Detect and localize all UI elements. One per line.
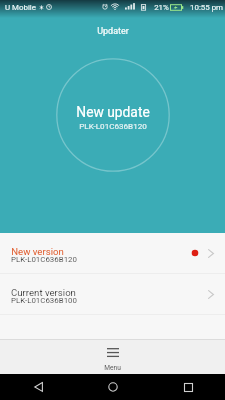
button[interactable]: Back [27, 376, 49, 398]
button[interactable]: Recent apps [177, 376, 199, 398]
staticText: New update [76, 104, 150, 120]
staticText: PLK-L01C636B120 [11, 255, 77, 264]
button[interactable]: Home [102, 376, 124, 398]
staticText: 21% [154, 3, 169, 12]
button[interactable]: Current version [0, 274, 225, 314]
button[interactable]: New version [0, 233, 225, 273]
staticText: PLK-L01C636B100 [11, 296, 77, 305]
staticText: Updater [97, 26, 129, 37]
staticText: New version [11, 246, 64, 257]
staticText: Current version [11, 287, 76, 298]
button[interactable]: Menu [0, 340, 225, 374]
staticText: Menu [104, 364, 121, 372]
staticText: U Mobile [5, 3, 36, 12]
staticText: PLK-L01C636B120 [79, 121, 147, 130]
staticText: 10:55 pm [190, 3, 223, 12]
